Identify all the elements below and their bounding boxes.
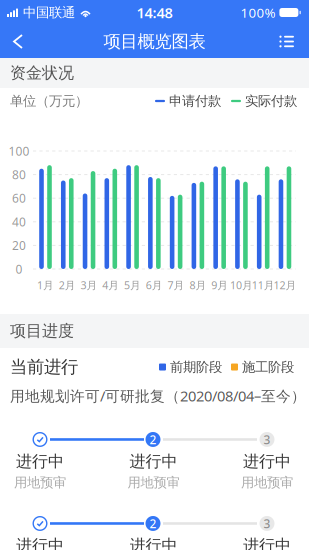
staticText: 1月 [37, 278, 54, 292]
staticText: 进行中 [16, 452, 64, 471]
staticText: 申请付款 [169, 93, 221, 109]
staticText: 20 [12, 237, 26, 253]
staticText: 6月 [146, 278, 163, 292]
button[interactable]: List [267, 27, 309, 56]
staticText: 用地预审 [127, 474, 179, 491]
staticText: 前期阶段 [170, 359, 222, 375]
staticText: 100% [240, 4, 275, 21]
staticText: 4月 [102, 278, 119, 292]
staticText: 12月 [273, 278, 296, 292]
staticText: 8月 [189, 278, 206, 292]
staticText: 进行中 [129, 536, 177, 550]
staticText: 2月 [59, 278, 76, 292]
staticText: 2 [149, 515, 156, 531]
staticText: 施工阶段 [242, 359, 294, 375]
staticText: 单位（万元） [10, 93, 88, 109]
button[interactable]: Back [0, 26, 38, 57]
staticText: 项目进度 [10, 321, 74, 341]
staticText: 11月 [252, 278, 275, 292]
staticText: 9月 [211, 278, 228, 292]
staticText: 项目概览图表 [103, 31, 205, 52]
staticText: 用地预审 [241, 474, 293, 491]
staticText: 2 [149, 431, 156, 447]
staticText: 用地规划许可/可研批复（2020/08/04–至今） [10, 386, 306, 405]
staticText: 进行中 [243, 452, 291, 471]
staticText: 进行中 [129, 452, 177, 471]
staticText: 7月 [168, 278, 185, 292]
staticText: 用地预审 [14, 474, 66, 491]
staticText: 60 [12, 190, 26, 206]
staticText: 进行中 [16, 536, 64, 550]
staticText: 中国联通 [23, 4, 75, 21]
staticText: 0 [15, 261, 22, 277]
staticText: 3月 [80, 278, 97, 292]
staticText: 实际付款 [245, 93, 297, 109]
staticText: 3 [263, 431, 270, 447]
staticText: 10月 [230, 278, 253, 292]
staticText: 80 [12, 167, 26, 182]
staticText: 当前进行 [10, 356, 78, 378]
staticText: 14:48 [136, 3, 172, 22]
staticText: 进行中 [243, 536, 291, 550]
staticText: 3 [263, 515, 270, 531]
staticText: 100 [8, 143, 29, 159]
staticText: 5月 [124, 278, 141, 292]
staticText: 资金状况 [10, 63, 74, 83]
staticText: 40 [12, 214, 26, 230]
